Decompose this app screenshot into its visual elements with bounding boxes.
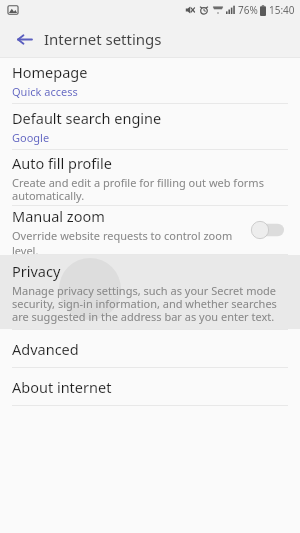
staticText: Internet settings [44,29,162,49]
button[interactable]: Navigate up [8,23,40,55]
button[interactable]: Privacy [0,255,300,329]
button[interactable]: Manual zoom toggle [248,218,288,242]
staticText: 76% [238,3,258,17]
staticText: Homepage [12,62,88,82]
staticText: Advanced [12,339,79,359]
button[interactable]: Advanced [0,330,300,367]
button[interactable]: Manual zoom [0,206,300,254]
staticText: Quick access [12,84,78,99]
button[interactable]: Homepage [0,58,300,103]
staticText: Manual zoom [12,206,105,226]
staticText: Manage privacy settings, such as your Se… [12,283,277,324]
staticText: Auto fill profile [12,153,113,173]
staticText: 15:40 [269,3,295,17]
staticText: Override website requests to control zoo… [12,228,248,254]
staticText: About internet [12,377,112,397]
staticText: Google [12,130,50,145]
staticText: Privacy [12,261,61,281]
button[interactable]: About internet [0,368,300,405]
staticText: Default search engine [12,108,162,128]
button[interactable]: Auto fill profile [0,150,300,205]
button[interactable]: Default search engine [0,104,300,149]
staticText: Create and edit a profile for filling ou… [12,175,264,203]
